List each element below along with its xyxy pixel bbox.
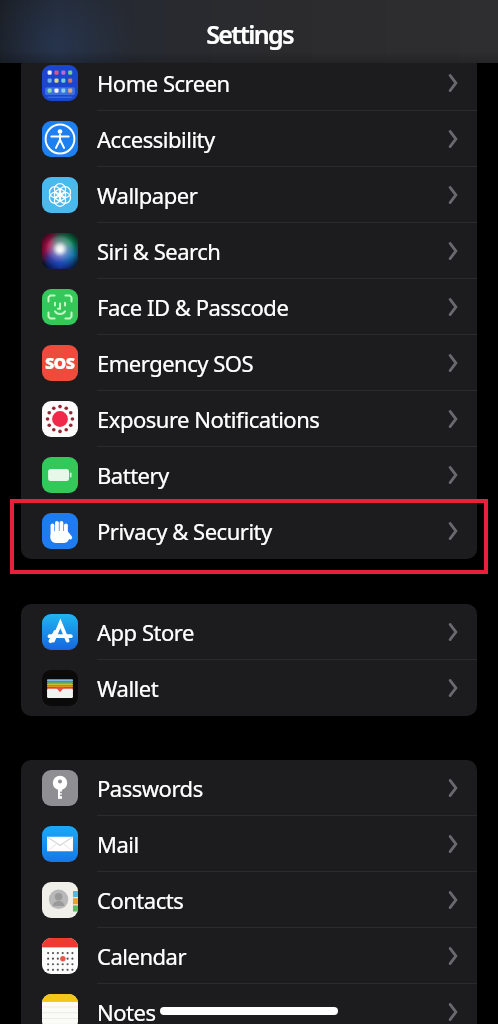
button[interactable]: Accessibility — [21, 111, 477, 167]
button[interactable]: Passwords — [21, 760, 477, 816]
button[interactable]: Siri & Search — [21, 223, 477, 279]
staticText: Battery — [97, 460, 169, 490]
button[interactable]: Exposure Notifications — [21, 391, 477, 447]
staticText: Wallet — [97, 673, 159, 703]
staticText: Privacy & Security — [97, 516, 272, 546]
button[interactable]: Privacy & Security — [21, 503, 477, 559]
button[interactable]: Calendar — [21, 928, 477, 984]
staticText: Notes — [97, 997, 156, 1024]
button[interactable]: Face ID & Passcode — [21, 279, 477, 335]
staticText: Calendar — [97, 941, 187, 971]
button[interactable]: Wallet — [21, 660, 477, 716]
button[interactable]: Home Screen — [21, 55, 477, 111]
button[interactable]: Wallpaper — [21, 167, 477, 223]
button[interactable]: Battery — [21, 447, 477, 503]
staticText: Siri & Search — [97, 236, 221, 266]
staticText: SOS — [45, 352, 75, 374]
staticText: Contacts — [97, 885, 184, 915]
staticText: App Store — [97, 617, 194, 647]
staticText: Passwords — [97, 773, 203, 803]
staticText: Face ID & Passcode — [97, 292, 289, 322]
staticText: Home Screen — [97, 68, 230, 98]
staticText: Accessibility — [97, 124, 215, 154]
button[interactable]: SOS — [21, 335, 477, 391]
button[interactable]: Contacts — [21, 872, 477, 928]
staticText: Emergency SOS — [97, 348, 254, 378]
button[interactable]: Mail — [21, 816, 477, 872]
staticText: Settings — [206, 17, 293, 51]
staticText: Mail — [97, 829, 139, 859]
button[interactable]: Notes — [21, 984, 477, 1024]
staticText: Wallpaper — [97, 180, 198, 210]
button[interactable]: App Store — [21, 604, 477, 660]
staticText: Exposure Notifications — [97, 404, 320, 434]
